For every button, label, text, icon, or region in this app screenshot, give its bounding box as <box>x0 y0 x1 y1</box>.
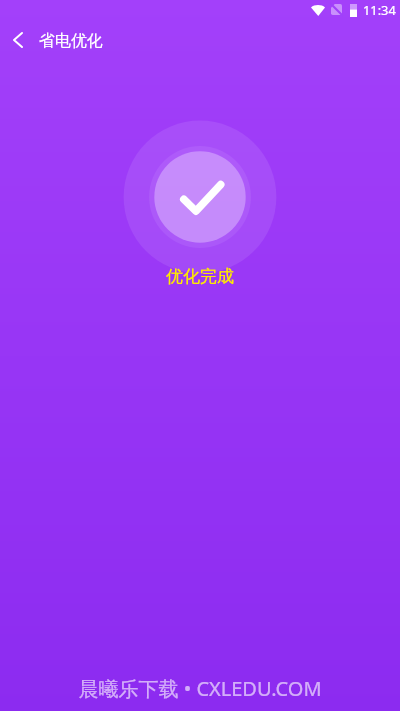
staticText: 11:34 <box>363 1 396 18</box>
staticText: 省电优化 <box>39 31 103 51</box>
button[interactable]: Back <box>0 23 36 57</box>
staticText: 优化完成 <box>166 266 234 287</box>
staticText: 晨曦乐下载 • CXLEDU.COM <box>78 675 322 702</box>
